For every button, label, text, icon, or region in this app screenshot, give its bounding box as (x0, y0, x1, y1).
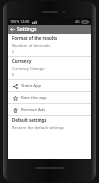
staticText: € (12, 72, 15, 77)
button[interactable]: Back (8, 25, 17, 34)
button[interactable]: Number of decimals (8, 42, 91, 56)
button[interactable]: Share App (8, 80, 91, 91)
staticText: Format of the results (12, 35, 58, 41)
staticText: Default settings (12, 117, 47, 123)
button[interactable]: Restore the default settings (8, 124, 91, 132)
button[interactable]: Rate this app (8, 92, 91, 103)
button[interactable]: Currency Change (8, 65, 91, 79)
staticText: Currency Change (12, 66, 45, 71)
staticText: Number of decimals (12, 43, 51, 48)
staticText: 2 (12, 49, 15, 54)
staticText: Restore the default settings (12, 125, 64, 130)
staticText: Currency (12, 58, 32, 64)
staticText: Rate this app (21, 95, 47, 101)
staticText: Share App (21, 83, 42, 89)
staticText: Remove Ads (21, 107, 46, 113)
staticText: Settings (17, 26, 37, 33)
button[interactable]: Remove Ads (8, 104, 91, 115)
staticText: 4G (75, 19, 80, 24)
staticText: 100% 12:00 (10, 19, 30, 24)
